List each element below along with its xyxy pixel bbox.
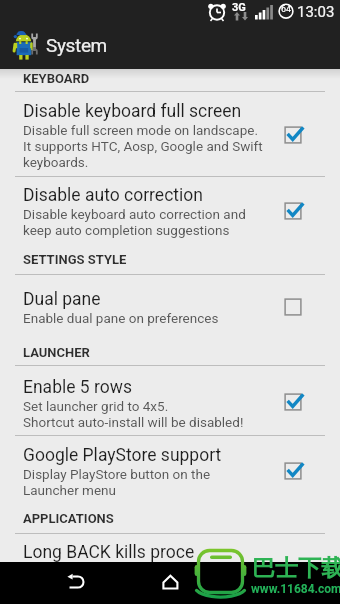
staticText: 3G [232, 1, 246, 14]
staticText: keep auto completion suggestions [23, 222, 230, 238]
button[interactable]: Enable 5 rows [0, 366, 340, 436]
staticText: www.11684.com [251, 582, 340, 596]
button[interactable]: Home [152, 562, 188, 604]
button[interactable]: Google PlayStore support [0, 436, 340, 507]
staticText: It supports HTC, Aosp, Google and Swift [23, 138, 263, 154]
staticText: Display PlayStore button on the [23, 466, 211, 482]
staticText: Launcher menu [23, 482, 116, 498]
staticText: Shortcut auto-install will be disabled! [23, 414, 244, 430]
button[interactable]: Dual pane [0, 275, 340, 341]
button[interactable]: Checked [280, 389, 306, 415]
button[interactable]: Disable keyboard full screen [0, 92, 340, 177]
button[interactable]: Checked [280, 122, 306, 148]
staticText: Enable dual pane on preferences [23, 310, 219, 326]
staticText: Disable auto correction [23, 185, 203, 206]
staticText: Disable full screen mode on landscape. [23, 122, 259, 138]
staticText: 13:03 [297, 3, 335, 21]
button[interactable]: Disable auto correction [0, 177, 340, 248]
staticText: LAUNCHER [23, 345, 90, 360]
button[interactable]: Back [58, 562, 94, 604]
button[interactable]: Long BACK kills proce [0, 534, 340, 562]
staticText: Disable keyboard auto correction and [23, 206, 246, 222]
button[interactable]: Checked [280, 198, 306, 224]
button[interactable]: Checked [280, 458, 306, 484]
staticText: Google PlayStore support [23, 445, 222, 466]
staticText: 64 [281, 4, 292, 15]
staticText: Long BACK kills proce [23, 542, 195, 563]
staticText: Set launcher grid to 4x5. [23, 398, 169, 414]
staticText: Enable 5 rows [23, 377, 132, 398]
staticText: KEYBOARD [23, 71, 90, 86]
staticText: APPLICATIONS [23, 511, 114, 526]
button[interactable]: Unchecked [280, 294, 306, 320]
staticText: System [46, 34, 107, 56]
staticText: Disable keyboard full screen [23, 101, 242, 122]
staticText: Dual pane [23, 289, 101, 310]
staticText: keyboards. [23, 154, 89, 170]
staticText: 巴士下载 [252, 554, 340, 583]
staticText: SETTINGS STYLE [23, 252, 127, 267]
